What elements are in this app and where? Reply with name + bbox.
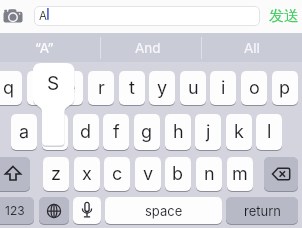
staticText: g <box>141 121 153 143</box>
button[interactable] <box>0 157 30 191</box>
button[interactable]: h <box>165 114 191 150</box>
button[interactable]: return <box>226 197 298 224</box>
button[interactable]: space <box>105 197 222 224</box>
staticText: q <box>3 77 15 99</box>
button[interactable]: m <box>227 157 253 191</box>
button[interactable]: k <box>226 114 252 150</box>
button[interactable]: t <box>119 71 145 105</box>
button[interactable]: y <box>149 71 175 105</box>
button[interactable]: 发送 <box>265 5 302 27</box>
staticText: d <box>80 121 92 143</box>
staticText: A <box>39 9 47 23</box>
button[interactable]: o <box>241 71 267 105</box>
staticText: t <box>129 77 135 99</box>
button[interactable]: n <box>196 157 222 191</box>
button[interactable]: z <box>43 157 69 191</box>
button[interactable]: a <box>11 114 37 150</box>
staticText: c <box>112 163 123 185</box>
button[interactable]: x <box>74 157 100 191</box>
button[interactable]: w <box>27 71 53 105</box>
button[interactable]: c <box>104 157 130 191</box>
button[interactable]: p <box>272 71 298 105</box>
staticText: u <box>188 77 199 99</box>
staticText: n <box>204 163 215 185</box>
button[interactable]: u <box>180 71 206 105</box>
staticText: 发送 <box>269 7 299 26</box>
staticText: 123 <box>5 203 25 218</box>
staticText: And <box>135 40 161 56</box>
staticText: k <box>234 121 244 143</box>
staticText: f <box>113 121 120 143</box>
button[interactable]: b <box>165 157 191 191</box>
staticText: x <box>82 163 92 185</box>
button[interactable]: 123 <box>0 197 34 224</box>
button[interactable] <box>264 157 298 191</box>
staticText: b <box>172 163 184 185</box>
staticText: j <box>206 121 211 143</box>
staticText: return <box>244 203 281 219</box>
staticText: m <box>232 163 248 185</box>
button[interactable]: q <box>0 71 22 105</box>
staticText: i <box>221 77 226 99</box>
button[interactable]: l <box>256 114 282 150</box>
staticText: r <box>98 77 105 99</box>
button[interactable]: r <box>88 71 114 105</box>
button[interactable]: s <box>42 114 68 150</box>
button[interactable]: i <box>210 71 236 105</box>
button[interactable]: f <box>103 114 129 150</box>
staticText: All <box>244 40 260 56</box>
button[interactable]: “A” <box>0 33 88 62</box>
button[interactable]: d <box>73 114 99 150</box>
staticText: space <box>145 203 183 219</box>
staticText: “A” <box>35 40 54 56</box>
staticText: l <box>267 121 272 143</box>
button[interactable]: j <box>195 114 221 150</box>
button[interactable]: And <box>101 33 194 62</box>
button[interactable] <box>73 197 101 224</box>
staticText: z <box>51 163 61 185</box>
button[interactable] <box>34 6 260 26</box>
button[interactable]: e <box>57 71 83 105</box>
staticText: e <box>65 77 76 99</box>
staticText: v <box>143 163 154 185</box>
button[interactable]: All <box>202 33 302 62</box>
button[interactable]: v <box>135 157 161 191</box>
button[interactable] <box>39 197 69 224</box>
staticText: o <box>249 77 260 99</box>
staticText: p <box>279 77 291 99</box>
button[interactable]: g <box>134 114 160 150</box>
staticText: y <box>157 77 168 99</box>
staticText: S <box>47 72 60 95</box>
staticText: a <box>19 121 30 143</box>
staticText: h <box>173 121 184 143</box>
